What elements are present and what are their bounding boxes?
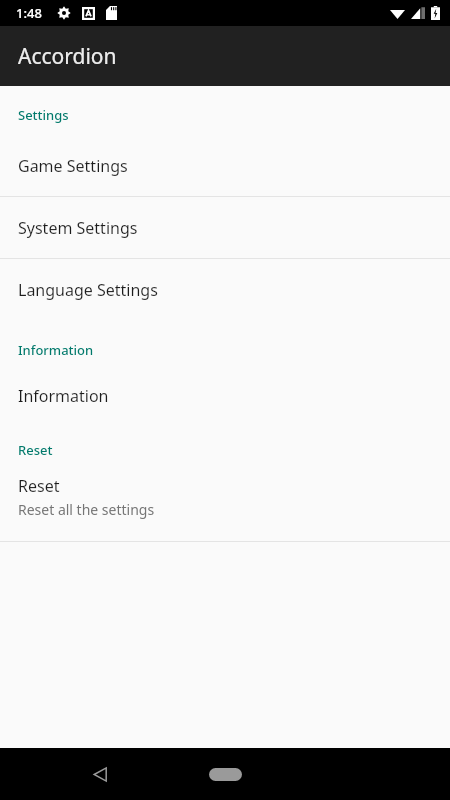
button[interactable]: Reset — [0, 469, 450, 541]
staticText: Language Settings — [18, 279, 158, 301]
button[interactable]: Information — [0, 371, 450, 421]
staticText: Accordion — [18, 42, 117, 71]
staticText: Reset — [18, 475, 60, 497]
staticText: 1:48 — [16, 4, 42, 22]
staticText: Information — [18, 385, 109, 407]
staticText: Information — [18, 341, 94, 359]
button[interactable]: Game Settings — [0, 136, 450, 196]
staticText: Settings — [18, 106, 69, 124]
button[interactable]: Language Settings — [0, 259, 450, 320]
staticText: Reset — [18, 441, 53, 459]
button[interactable]: Back — [78, 752, 122, 796]
staticText: System Settings — [18, 217, 138, 239]
button[interactable]: System Settings — [0, 197, 450, 258]
staticText: Reset all the settings — [18, 500, 155, 519]
staticText: Game Settings — [18, 155, 128, 177]
button[interactable]: Home — [198, 757, 252, 791]
